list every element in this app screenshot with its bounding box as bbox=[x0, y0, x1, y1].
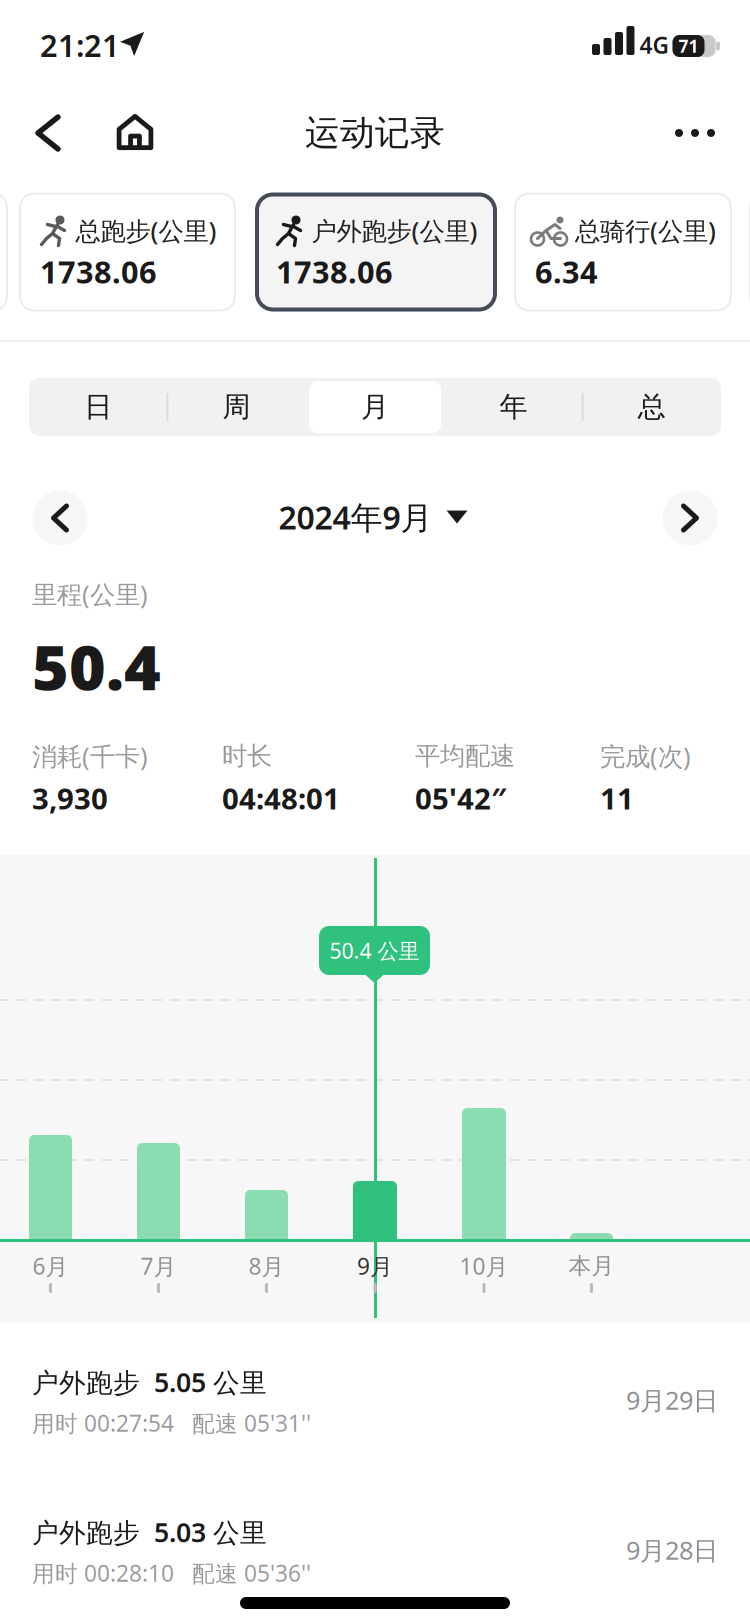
staticText: 户外跑步(公里) bbox=[311, 214, 477, 247]
staticText: 8月 bbox=[248, 1251, 284, 1281]
button[interactable]: 2024年9月 bbox=[278, 496, 467, 538]
button[interactable]: Previous month bbox=[32, 490, 87, 545]
staticText: 消耗(千卡) bbox=[32, 739, 148, 773]
button[interactable]: 月 bbox=[306, 378, 444, 436]
staticText: 用时 00:27:54 配速 05'31'' bbox=[32, 1408, 311, 1438]
staticText: 户外跑步 5.03 公里 bbox=[32, 1514, 267, 1550]
staticText: 年 bbox=[499, 390, 527, 424]
button[interactable]: Next month bbox=[662, 490, 717, 545]
staticText: 4G bbox=[639, 30, 668, 60]
staticText: 完成(次) bbox=[600, 739, 691, 773]
staticText: 71 bbox=[678, 34, 698, 57]
button[interactable]: 总 bbox=[583, 378, 721, 436]
staticText: 户外跑步 5.05 公里 bbox=[32, 1364, 267, 1400]
staticText: 21:21 bbox=[40, 25, 120, 65]
staticText: 总跑步(公里) bbox=[75, 214, 216, 247]
staticText: 总 bbox=[638, 390, 666, 424]
button[interactable]: More bbox=[663, 117, 727, 149]
button[interactable]: Home bbox=[106, 105, 163, 159]
button[interactable]: 总骑行(公里) bbox=[514, 192, 732, 311]
staticText: 日 bbox=[84, 390, 112, 424]
staticText: 周 bbox=[223, 390, 251, 424]
button[interactable]: 户外跑步 5.05 公里 bbox=[0, 1367, 750, 1479]
staticText: 50.4 bbox=[32, 624, 161, 708]
staticText: 里程(公里) bbox=[32, 577, 148, 611]
button[interactable]: 总跑步(公里) bbox=[19, 192, 236, 311]
staticText: 9月 bbox=[357, 1251, 393, 1281]
staticText: 本月 bbox=[568, 1252, 614, 1280]
button[interactable]: 周 bbox=[168, 378, 306, 436]
staticText: 11 bbox=[600, 778, 634, 817]
staticText: 2024年9月 bbox=[278, 496, 432, 538]
staticText: 平均配速 bbox=[415, 740, 515, 771]
staticText: 6.34 bbox=[535, 251, 598, 292]
staticText: 05'42″ bbox=[415, 778, 506, 817]
staticText: 总骑行(公里) bbox=[575, 214, 716, 247]
staticText: 7月 bbox=[140, 1251, 176, 1281]
staticText: 04:48:01 bbox=[222, 778, 340, 817]
staticText: 9月29日 bbox=[626, 1383, 718, 1417]
staticText: 3,930 bbox=[32, 778, 108, 817]
button[interactable]: Back bbox=[26, 105, 70, 161]
staticText: 1738.06 bbox=[40, 251, 157, 292]
staticText: 时长 bbox=[222, 740, 272, 771]
button[interactable]: 户外跑步 5.03 公里 bbox=[0, 1517, 750, 1624]
button[interactable]: 年 bbox=[444, 378, 582, 436]
staticText: 1738.06 bbox=[276, 251, 393, 292]
staticText: 9月28日 bbox=[626, 1533, 718, 1567]
staticText: 运动记录 bbox=[305, 112, 445, 154]
button[interactable]: 户外跑步(公里) bbox=[255, 192, 497, 311]
staticText: 50.4 公里 bbox=[329, 936, 419, 965]
staticText: 用时 00:28:10 配速 05'36'' bbox=[32, 1558, 311, 1588]
staticText: 月 bbox=[361, 390, 389, 424]
staticText: 10月 bbox=[459, 1251, 508, 1281]
staticText: 6月 bbox=[32, 1251, 68, 1281]
button[interactable]: 日 bbox=[29, 378, 167, 436]
